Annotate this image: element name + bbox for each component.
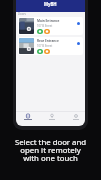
staticText: 107 B Street: [37, 44, 53, 48]
staticText: 107 B Street: [37, 24, 53, 28]
staticText: Rear Entrance: [37, 39, 59, 43]
button[interactable]: Main Entrance: [18, 17, 83, 35]
button[interactable]: [69, 114, 83, 120]
button[interactable]: [44, 49, 50, 54]
staticText: Doors: [18, 12, 26, 16]
button[interactable]: [37, 29, 43, 34]
button[interactable]: MyBH: [16, 0, 85, 12]
button[interactable]: [37, 49, 43, 54]
button[interactable]: [77, 22, 80, 25]
button[interactable]: [44, 29, 50, 34]
staticText: Select the door and open it remotely wit…: [0, 137, 101, 164]
button[interactable]: Rear Entrance: [18, 37, 83, 55]
button[interactable]: [45, 114, 59, 120]
button[interactable]: [21, 114, 35, 120]
staticText: MyBH: [44, 1, 57, 7]
staticText: Main Entrance: [37, 19, 60, 23]
button[interactable]: [77, 42, 80, 45]
